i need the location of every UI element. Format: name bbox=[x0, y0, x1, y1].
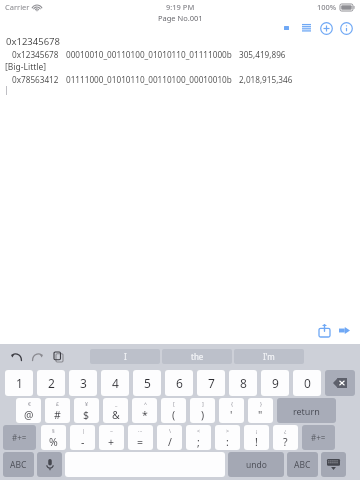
staticText: [Big-Little] bbox=[5, 61, 47, 73]
staticText: 7 bbox=[208, 375, 215, 391]
button[interactable]: Dictation bbox=[37, 452, 62, 477]
button[interactable]: < bbox=[186, 425, 211, 450]
button[interactable]: Paste bbox=[51, 349, 66, 364]
staticText: $ bbox=[83, 408, 90, 422]
button[interactable]: I bbox=[90, 349, 160, 364]
staticText: 8 bbox=[240, 375, 247, 391]
staticText: 100% bbox=[317, 2, 337, 12]
staticText: I'm bbox=[263, 351, 275, 362]
button[interactable]: ^ bbox=[132, 398, 157, 423]
staticText: < bbox=[197, 427, 200, 434]
button[interactable]: ··· bbox=[128, 425, 153, 450]
button[interactable]: 8 bbox=[229, 370, 257, 396]
staticText: } bbox=[260, 400, 262, 407]
button[interactable]: { bbox=[219, 398, 244, 423]
button[interactable]: 0 bbox=[293, 370, 321, 396]
staticText: ^ bbox=[144, 400, 147, 407]
button[interactable]: > bbox=[215, 425, 240, 450]
staticText: * bbox=[142, 408, 148, 422]
staticText: 2 bbox=[48, 375, 55, 391]
button[interactable]: § bbox=[41, 425, 66, 450]
staticText: ( bbox=[172, 408, 176, 422]
button[interactable]: 6 bbox=[165, 370, 193, 396]
staticText: 305,419,896 bbox=[239, 49, 286, 60]
staticText: > bbox=[226, 427, 229, 434]
button[interactable]: ¡ bbox=[244, 425, 269, 450]
button[interactable]: 5 bbox=[133, 370, 161, 396]
staticText: ? bbox=[283, 435, 288, 449]
button[interactable]: Hide keyboard bbox=[321, 452, 346, 477]
staticText: ; bbox=[197, 435, 200, 449]
button[interactable]: _ bbox=[103, 398, 128, 423]
button[interactable]: 2 bbox=[37, 370, 65, 396]
staticText: the bbox=[191, 351, 204, 362]
staticText: £ bbox=[56, 400, 59, 407]
button[interactable]: | bbox=[70, 425, 95, 450]
staticText: I bbox=[124, 351, 127, 362]
staticText: 00010010_00110100_01010110_01111000b bbox=[66, 49, 232, 60]
button[interactable]: 9 bbox=[261, 370, 289, 396]
button[interactable]: 3 bbox=[69, 370, 97, 396]
button[interactable]: £ bbox=[45, 398, 70, 423]
button[interactable]: ABC bbox=[3, 452, 34, 477]
staticText: 9:19 PM bbox=[166, 2, 195, 12]
staticText: ¥ bbox=[85, 400, 88, 407]
button[interactable]: ¿ bbox=[273, 425, 298, 450]
button[interactable]: #+= bbox=[3, 425, 36, 450]
button[interactable]: Backspace bbox=[325, 370, 355, 396]
staticText: + bbox=[108, 435, 115, 449]
staticText: _ bbox=[115, 400, 118, 407]
button[interactable]: Send bbox=[336, 322, 352, 338]
staticText: @ bbox=[24, 408, 34, 422]
button[interactable]: \ bbox=[157, 425, 182, 450]
button[interactable]: Share bbox=[315, 321, 333, 339]
staticText: \ bbox=[169, 427, 171, 434]
staticText: #+= bbox=[12, 432, 27, 443]
button[interactable]: #+= bbox=[302, 425, 335, 450]
staticText: Page No.001 bbox=[158, 13, 203, 23]
button[interactable]: undo bbox=[228, 452, 284, 477]
staticText: ] bbox=[202, 400, 204, 407]
staticText: ! bbox=[255, 435, 258, 449]
button[interactable]: [ bbox=[161, 398, 186, 423]
staticText: 1 bbox=[16, 375, 23, 391]
button[interactable]: Add bbox=[318, 20, 334, 36]
button[interactable]: 4 bbox=[101, 370, 129, 396]
staticText: 2,018,915,346 bbox=[239, 74, 293, 85]
staticText: 5 bbox=[144, 375, 151, 391]
staticText: 0x12345678 bbox=[12, 49, 59, 60]
button[interactable]: return bbox=[277, 398, 336, 423]
staticText: 4 bbox=[112, 375, 119, 391]
staticText: ¿ bbox=[284, 427, 287, 434]
button[interactable]: Undo bbox=[9, 349, 24, 364]
button[interactable]: ¥ bbox=[74, 398, 99, 423]
button[interactable]: } bbox=[248, 398, 273, 423]
button[interactable]: the bbox=[162, 349, 232, 364]
staticText: % bbox=[49, 435, 58, 449]
button[interactable]: List bbox=[298, 20, 314, 36]
staticText: " bbox=[258, 408, 263, 422]
button[interactable]: ] bbox=[190, 398, 215, 423]
staticText: = bbox=[137, 435, 144, 449]
button[interactable]: Redo bbox=[30, 349, 45, 364]
staticText: { bbox=[231, 400, 233, 407]
button[interactable]: Close bbox=[278, 20, 294, 36]
staticText: ABC bbox=[10, 459, 27, 471]
staticText: return bbox=[293, 405, 320, 417]
staticText: 6 bbox=[176, 375, 183, 391]
button[interactable]: ABC bbox=[287, 452, 318, 477]
staticText: ' bbox=[230, 408, 233, 422]
staticText: 3 bbox=[80, 375, 87, 391]
button[interactable]: 1 bbox=[5, 370, 33, 396]
button[interactable]: 7 bbox=[197, 370, 225, 396]
staticText: ABC bbox=[294, 459, 311, 471]
button[interactable]: € bbox=[16, 398, 41, 423]
staticText: - bbox=[81, 435, 85, 449]
button[interactable]: ~ bbox=[99, 425, 124, 450]
staticText: § bbox=[52, 427, 55, 434]
button[interactable]: I'm bbox=[234, 349, 304, 364]
staticText: ) bbox=[201, 408, 205, 422]
staticText: undo bbox=[246, 459, 267, 471]
button[interactable]: Info bbox=[338, 20, 354, 36]
